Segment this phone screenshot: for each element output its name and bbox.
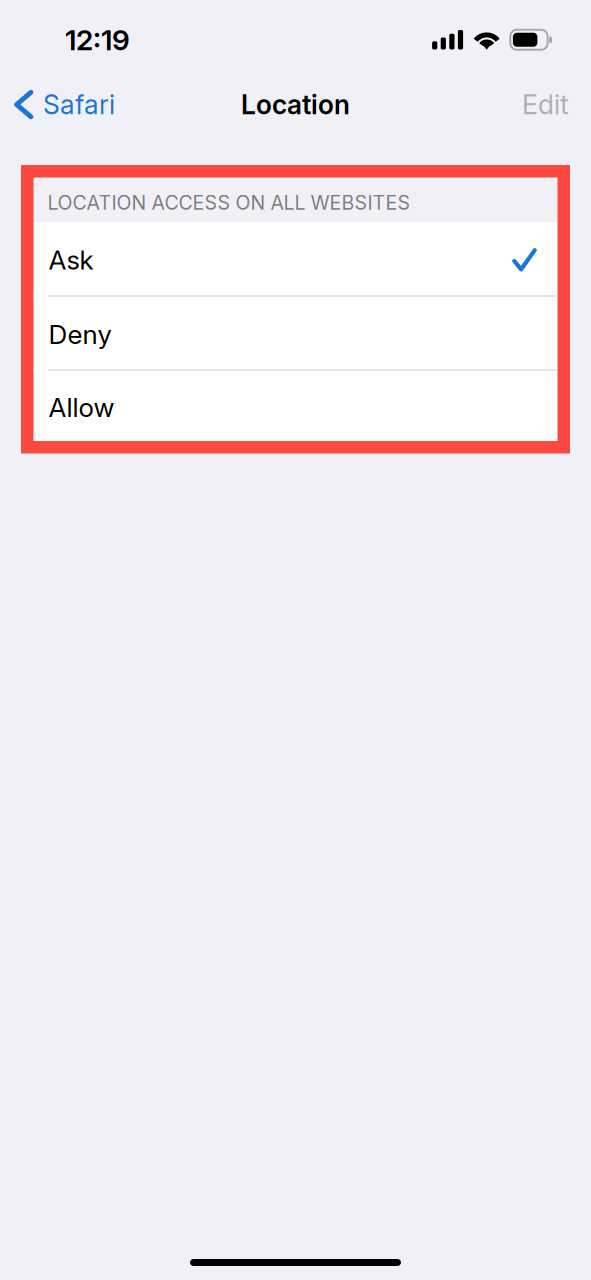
staticText: Deny bbox=[48, 319, 111, 350]
staticText: Safari bbox=[43, 88, 115, 120]
staticText: Edit bbox=[522, 88, 569, 120]
button[interactable]: Ask bbox=[33, 222, 557, 297]
button[interactable]: Edit bbox=[508, 78, 591, 130]
button[interactable]: Safari bbox=[0, 78, 127, 130]
staticText: LOCATION ACCESS ON ALL WEBSITES bbox=[47, 191, 410, 214]
staticText: 12:19 bbox=[65, 23, 130, 57]
staticText: Allow bbox=[48, 392, 114, 423]
staticText: Ask bbox=[48, 244, 93, 276]
button[interactable]: Deny bbox=[33, 297, 557, 371]
button[interactable]: Allow bbox=[33, 371, 557, 441]
staticText: Location bbox=[241, 88, 350, 120]
